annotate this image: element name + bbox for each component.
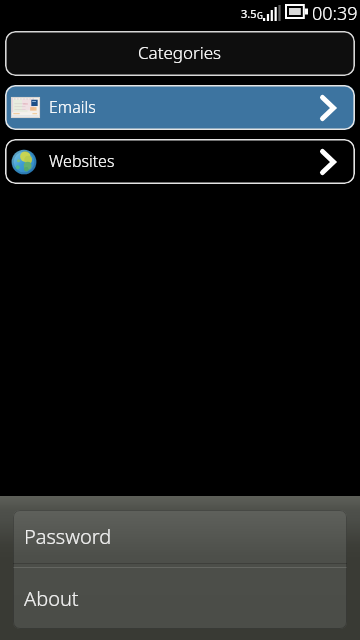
staticText: Categories [138,41,222,64]
staticText: Password [24,523,112,550]
staticText: 00:39 [312,1,358,25]
other: Open Websites [320,149,336,175]
other: Battery [285,4,308,19]
other: Open Emails [320,95,336,121]
staticText: Emails [49,96,96,118]
button[interactable]: Emails [5,85,355,130]
other: Signal strength [263,5,282,21]
staticText: G [257,10,263,21]
staticText: About [24,585,79,612]
button[interactable]: About [13,568,347,629]
button[interactable]: Password [13,510,347,563]
staticText: 3.5 [241,6,257,21]
staticText: Websites [49,150,115,172]
button[interactable]: Categories [5,31,355,76]
button[interactable]: Websites [5,139,355,184]
